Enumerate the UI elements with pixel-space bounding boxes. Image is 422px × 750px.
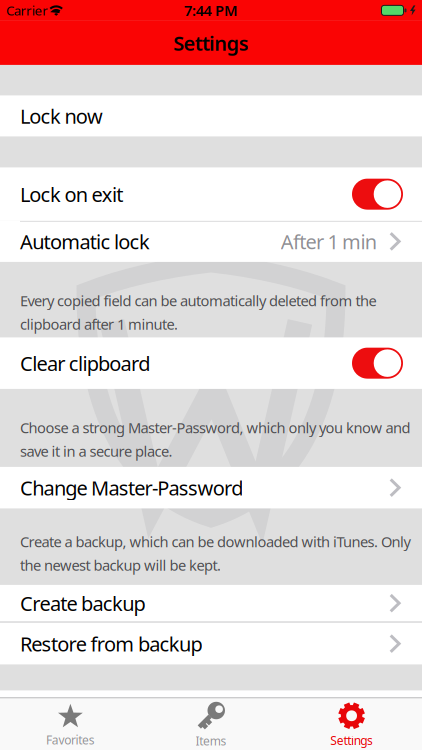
- button[interactable]: Favorites: [0, 699, 141, 750]
- button[interactable]: Settings: [281, 699, 422, 750]
- staticText: Every copied field can be automatically …: [20, 291, 376, 334]
- button[interactable]: Items: [141, 699, 281, 750]
- staticText: Carrier: [6, 1, 48, 19]
- staticText: Restore from backup: [20, 630, 202, 657]
- staticText: 7:44 PM: [184, 1, 238, 20]
- staticText: Settings: [330, 732, 373, 748]
- staticText: Lock now: [20, 103, 103, 129]
- button[interactable]: Automatic lock: [0, 221, 422, 262]
- staticText: Create backup: [20, 590, 146, 616]
- staticText: Items: [196, 733, 226, 749]
- staticText: Automatic lock: [20, 228, 150, 255]
- staticText: Lock on exit: [20, 181, 123, 207]
- staticText: Choose a strong Master-Password, which o…: [20, 418, 410, 461]
- staticText: After 1 min: [281, 228, 377, 255]
- button[interactable]: Create backup: [0, 585, 422, 621]
- staticText: Change Master-Password: [20, 474, 243, 501]
- button[interactable]: Clear clipboard: [352, 348, 403, 379]
- staticText: Create a backup, which can be downloaded…: [20, 532, 410, 575]
- button[interactable]: Restore from backup: [0, 623, 422, 664]
- staticText: Favorites: [46, 732, 95, 748]
- button[interactable]: Lock on exit: [352, 179, 403, 210]
- staticText: Settings: [173, 30, 249, 56]
- button[interactable]: Lock now: [0, 95, 422, 136]
- staticText: Clear clipboard: [20, 350, 150, 376]
- button[interactable]: Change Master-Password: [0, 467, 422, 508]
